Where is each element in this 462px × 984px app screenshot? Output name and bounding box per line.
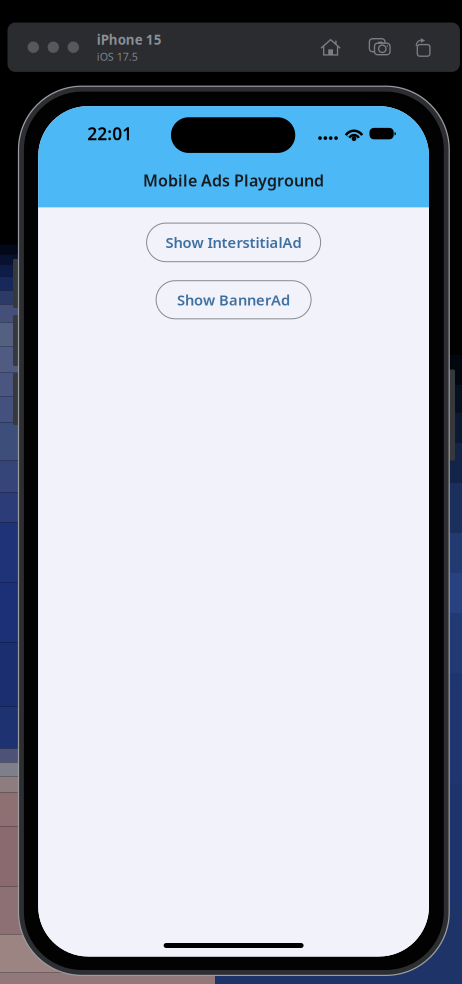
button[interactable]: Close	[28, 41, 39, 53]
button[interactable]: Home	[321, 38, 341, 56]
button[interactable]: Screenshot	[369, 38, 390, 56]
staticText: iPhone 15	[97, 31, 162, 48]
button[interactable]: Show BannerAd	[156, 281, 311, 319]
staticText: 22:01	[87, 122, 132, 145]
staticText: Show InterstitialAd	[166, 233, 302, 252]
button[interactable]: Show InterstitialAd	[147, 223, 321, 262]
button[interactable]: Zoom	[68, 41, 79, 53]
staticText: Mobile Ads Playground	[143, 170, 324, 191]
staticText: Show BannerAd	[177, 290, 290, 309]
button[interactable]: Rotate	[411, 38, 430, 56]
staticText: iOS 17.5	[97, 50, 138, 64]
button[interactable]: Minimise	[48, 41, 59, 53]
